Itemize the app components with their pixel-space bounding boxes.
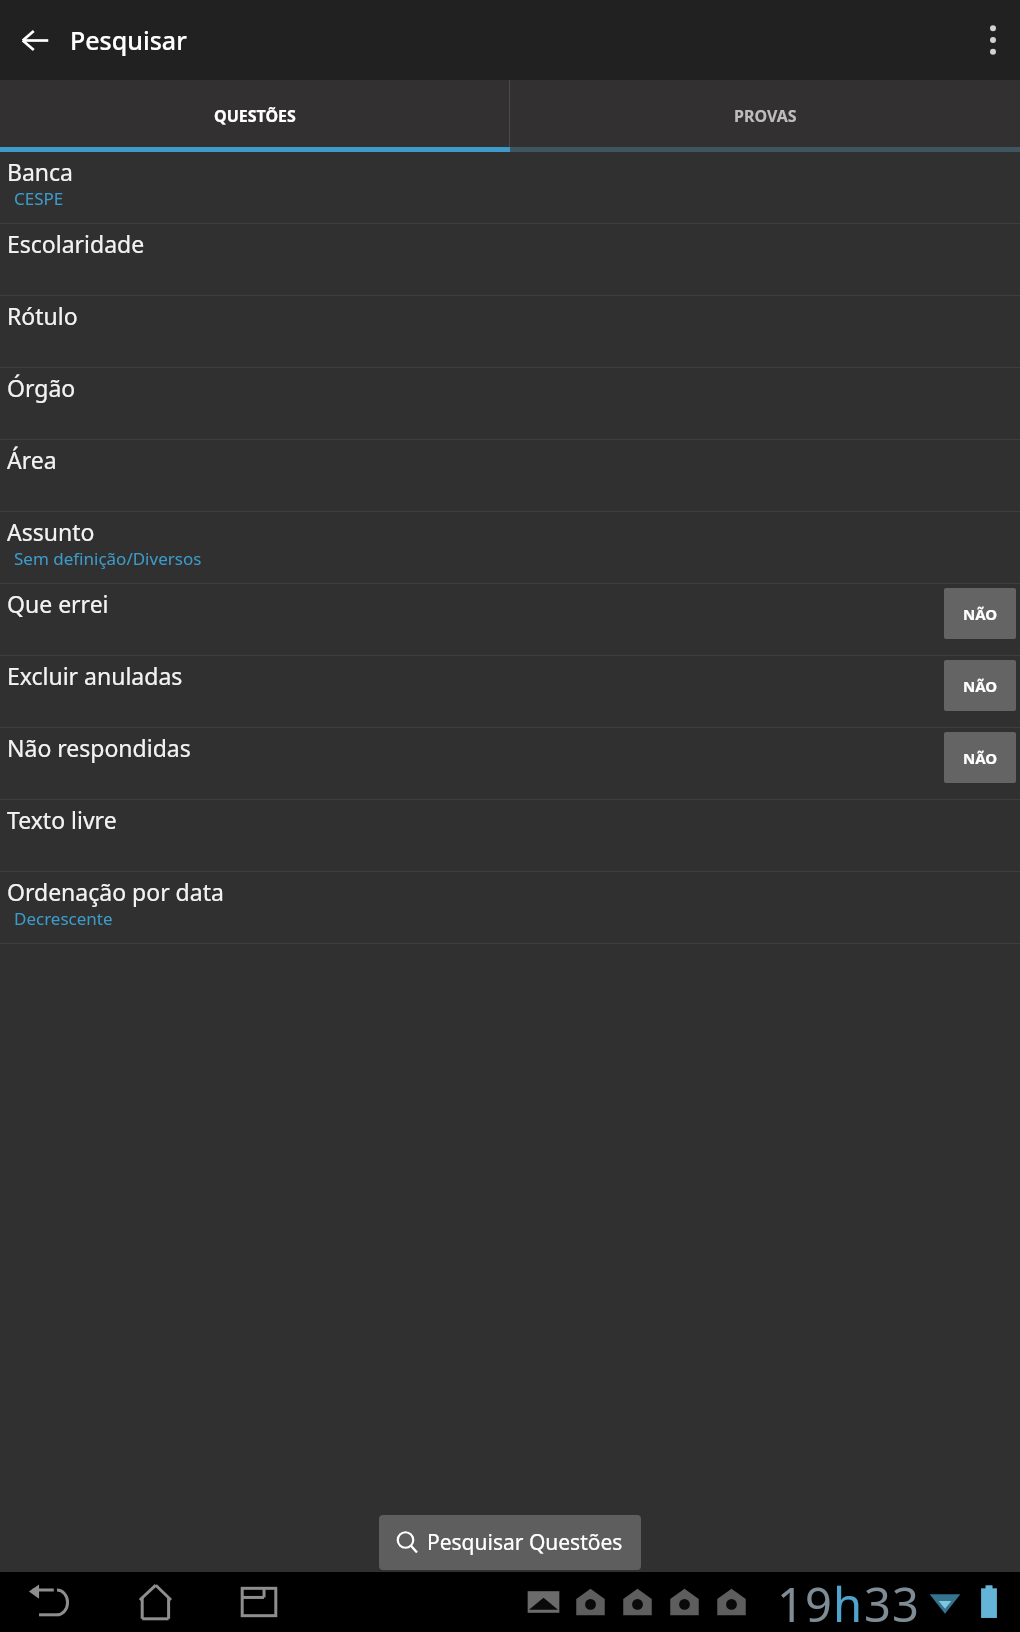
staticText: NÃO — [963, 604, 998, 624]
staticText: Área — [7, 444, 57, 475]
staticText: 19 — [777, 1572, 833, 1632]
staticText: 33 — [864, 1572, 920, 1632]
staticText: Banca — [7, 156, 74, 187]
button[interactable]: Área — [0, 440, 1020, 512]
staticText: Texto livre — [7, 804, 117, 835]
staticText: h — [833, 1572, 864, 1632]
staticText: Que errei — [7, 588, 109, 619]
button[interactable]: NÃO — [944, 660, 1016, 711]
button[interactable]: NÃO — [944, 588, 1016, 639]
button[interactable]: Não respondidas — [0, 728, 1020, 800]
button[interactable]: QUESTÕES — [0, 80, 509, 152]
staticText: Ordenação por data — [7, 876, 224, 907]
button[interactable]: Pesquisar Questões — [379, 1515, 641, 1570]
staticText: Decrescente — [14, 907, 113, 930]
staticText: NÃO — [963, 676, 998, 696]
staticText: PROVAS — [734, 105, 797, 127]
staticText: Sem definição/Diversos — [14, 547, 202, 570]
staticText: Pesquisar Questões — [427, 1528, 623, 1557]
button[interactable]: Recents — [216, 1572, 302, 1632]
button[interactable]: Rótulo — [0, 296, 1020, 368]
button[interactable]: Assunto — [0, 512, 1020, 584]
staticText: Órgão — [7, 372, 76, 403]
button[interactable]: Back — [8, 1572, 94, 1632]
button[interactable]: Banca — [0, 152, 1020, 224]
button[interactable]: Back — [0, 0, 70, 80]
button[interactable]: More options — [966, 0, 1020, 80]
button[interactable]: Ordenação por data — [0, 872, 1020, 944]
button[interactable]: Escolaridade — [0, 224, 1020, 296]
staticText: Não respondidas — [7, 732, 191, 763]
staticText: Assunto — [7, 516, 95, 547]
button[interactable]: Texto livre — [0, 800, 1020, 872]
staticText: QUESTÕES — [214, 105, 296, 127]
staticText: Rótulo — [7, 300, 78, 331]
staticText: Excluir anuladas — [7, 660, 183, 691]
button[interactable]: Que errei — [0, 584, 1020, 656]
staticText: Escolaridade — [7, 228, 145, 259]
button[interactable]: PROVAS — [510, 80, 1020, 152]
button[interactable]: Home — [112, 1572, 198, 1632]
button[interactable]: Excluir anuladas — [0, 656, 1020, 728]
staticText: NÃO — [963, 748, 998, 768]
button[interactable]: Órgão — [0, 368, 1020, 440]
staticText: Pesquisar — [70, 23, 187, 57]
staticText: CESPE — [14, 187, 64, 210]
button[interactable]: NÃO — [944, 732, 1016, 783]
